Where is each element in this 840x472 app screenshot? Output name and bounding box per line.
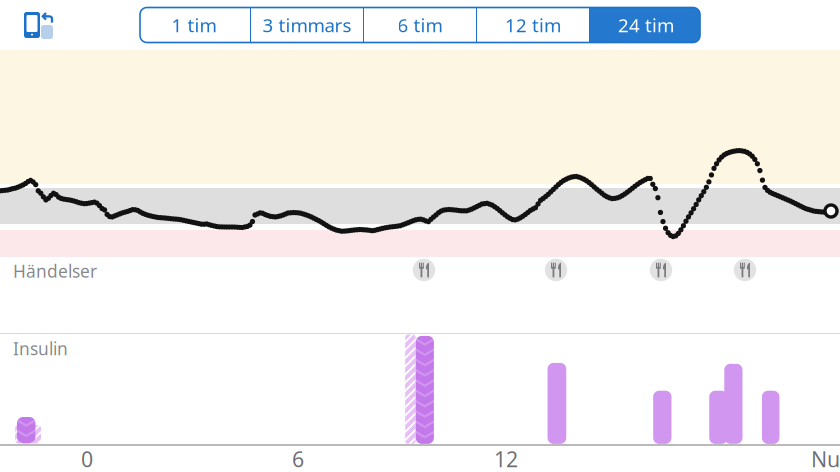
staticText: Nu: [811, 445, 840, 472]
staticText: 12: [494, 445, 518, 472]
button[interactable]: 1 tim: [138, 7, 250, 42]
staticText: 0: [81, 445, 93, 472]
staticText: 12 tim: [505, 13, 561, 37]
staticText: Insulin: [13, 337, 68, 360]
staticText: 6: [292, 445, 304, 472]
button[interactable]: 6 tim: [364, 7, 476, 42]
staticText: Händelser: [13, 259, 97, 282]
staticText: 6 tim: [397, 13, 442, 37]
button[interactable]: Rotate device: [12, 11, 64, 53]
staticText: 3 timmars: [262, 13, 351, 37]
button[interactable]: 3 timmars: [251, 7, 363, 42]
staticText: 1 tim: [171, 13, 216, 37]
staticText: 24 tim: [618, 13, 674, 37]
button[interactable]: 12 tim: [477, 7, 589, 42]
button[interactable]: 24 tim: [590, 7, 702, 42]
